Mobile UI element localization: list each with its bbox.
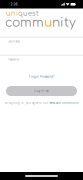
staticText: Forgot Password?	[29, 75, 54, 78]
button[interactable]: Terms and Conditions	[49, 101, 78, 105]
staticText: Password	[8, 58, 20, 61]
button[interactable]: Log In	[6, 86, 77, 96]
staticText: Username	[8, 40, 21, 43]
staticText: By signing in, you agree to our	[5, 101, 49, 105]
staticText: u	[44, 16, 52, 30]
button[interactable]: Username	[0, 32, 83, 50]
staticText: 2:26	[10, 2, 17, 6]
staticText: uni	[6, 10, 18, 17]
staticText: Log In	[34, 89, 44, 93]
staticText: nity	[52, 16, 76, 30]
button[interactable]: Forgot Password?	[0, 73, 83, 80]
staticText: comm	[5, 16, 44, 30]
button[interactable]: Password	[0, 50, 83, 68]
staticText: quest	[18, 10, 39, 17]
staticText: Terms and Conditions	[49, 101, 78, 105]
